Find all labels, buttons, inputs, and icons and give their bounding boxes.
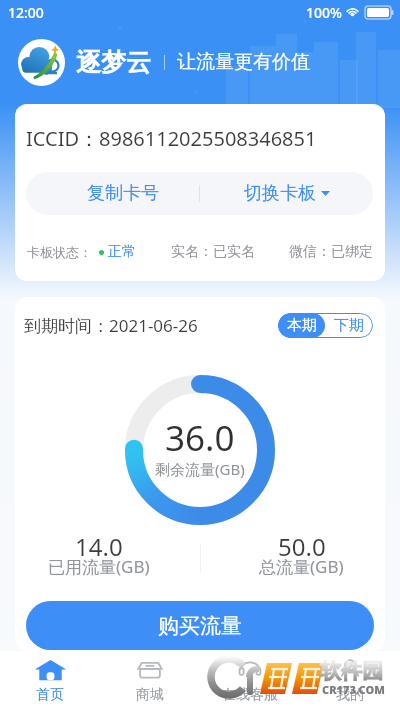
staticText: 卡板状态：	[27, 244, 92, 260]
staticText: 我的	[336, 686, 364, 704]
button[interactable]: 本期	[278, 313, 325, 338]
staticText: 切换卡板	[244, 182, 316, 205]
staticText: 让流量更有价值	[177, 50, 310, 74]
staticText: 到期时间：2021-06-26	[24, 314, 198, 337]
staticText: 购买流量	[158, 613, 242, 639]
button[interactable]: 我的	[300, 651, 400, 711]
button[interactable]: 切换卡板	[200, 172, 373, 215]
staticText: 14.0	[75, 530, 123, 563]
staticText: 50.0	[278, 530, 326, 563]
staticText: 微信：已绑定	[289, 243, 373, 261]
button[interactable]: 购买流量	[26, 601, 374, 650]
staticText: 下期	[334, 316, 364, 335]
staticText: 正常	[108, 243, 136, 261]
staticText: 本期	[287, 316, 317, 335]
button[interactable]: 在线客服	[200, 651, 300, 711]
staticText: 逐梦云	[76, 47, 151, 78]
staticText: 12:00	[8, 3, 44, 22]
staticText: 软件园	[320, 658, 383, 684]
staticText: 已用流量(GB)	[48, 555, 150, 578]
staticText: ICCID：8986112025508346851	[26, 125, 317, 152]
staticText: 100%	[306, 3, 342, 22]
staticText: 36.0	[165, 414, 235, 462]
staticText: 首页	[36, 686, 64, 704]
staticText: 剩余流量(GB)	[155, 459, 245, 479]
button[interactable]: 下期	[325, 313, 373, 338]
staticText: 实名：已实名	[171, 243, 255, 261]
staticText: 在线客服	[222, 686, 278, 704]
staticText: CR173.COM	[322, 682, 385, 697]
staticText: 总流量(GB)	[259, 555, 344, 578]
button[interactable]: 复制卡号	[26, 172, 199, 215]
staticText: 复制卡号	[87, 182, 159, 205]
staticText: 商城	[136, 686, 164, 704]
button[interactable]: 商城	[100, 651, 200, 711]
button[interactable]: 首页	[0, 651, 100, 711]
